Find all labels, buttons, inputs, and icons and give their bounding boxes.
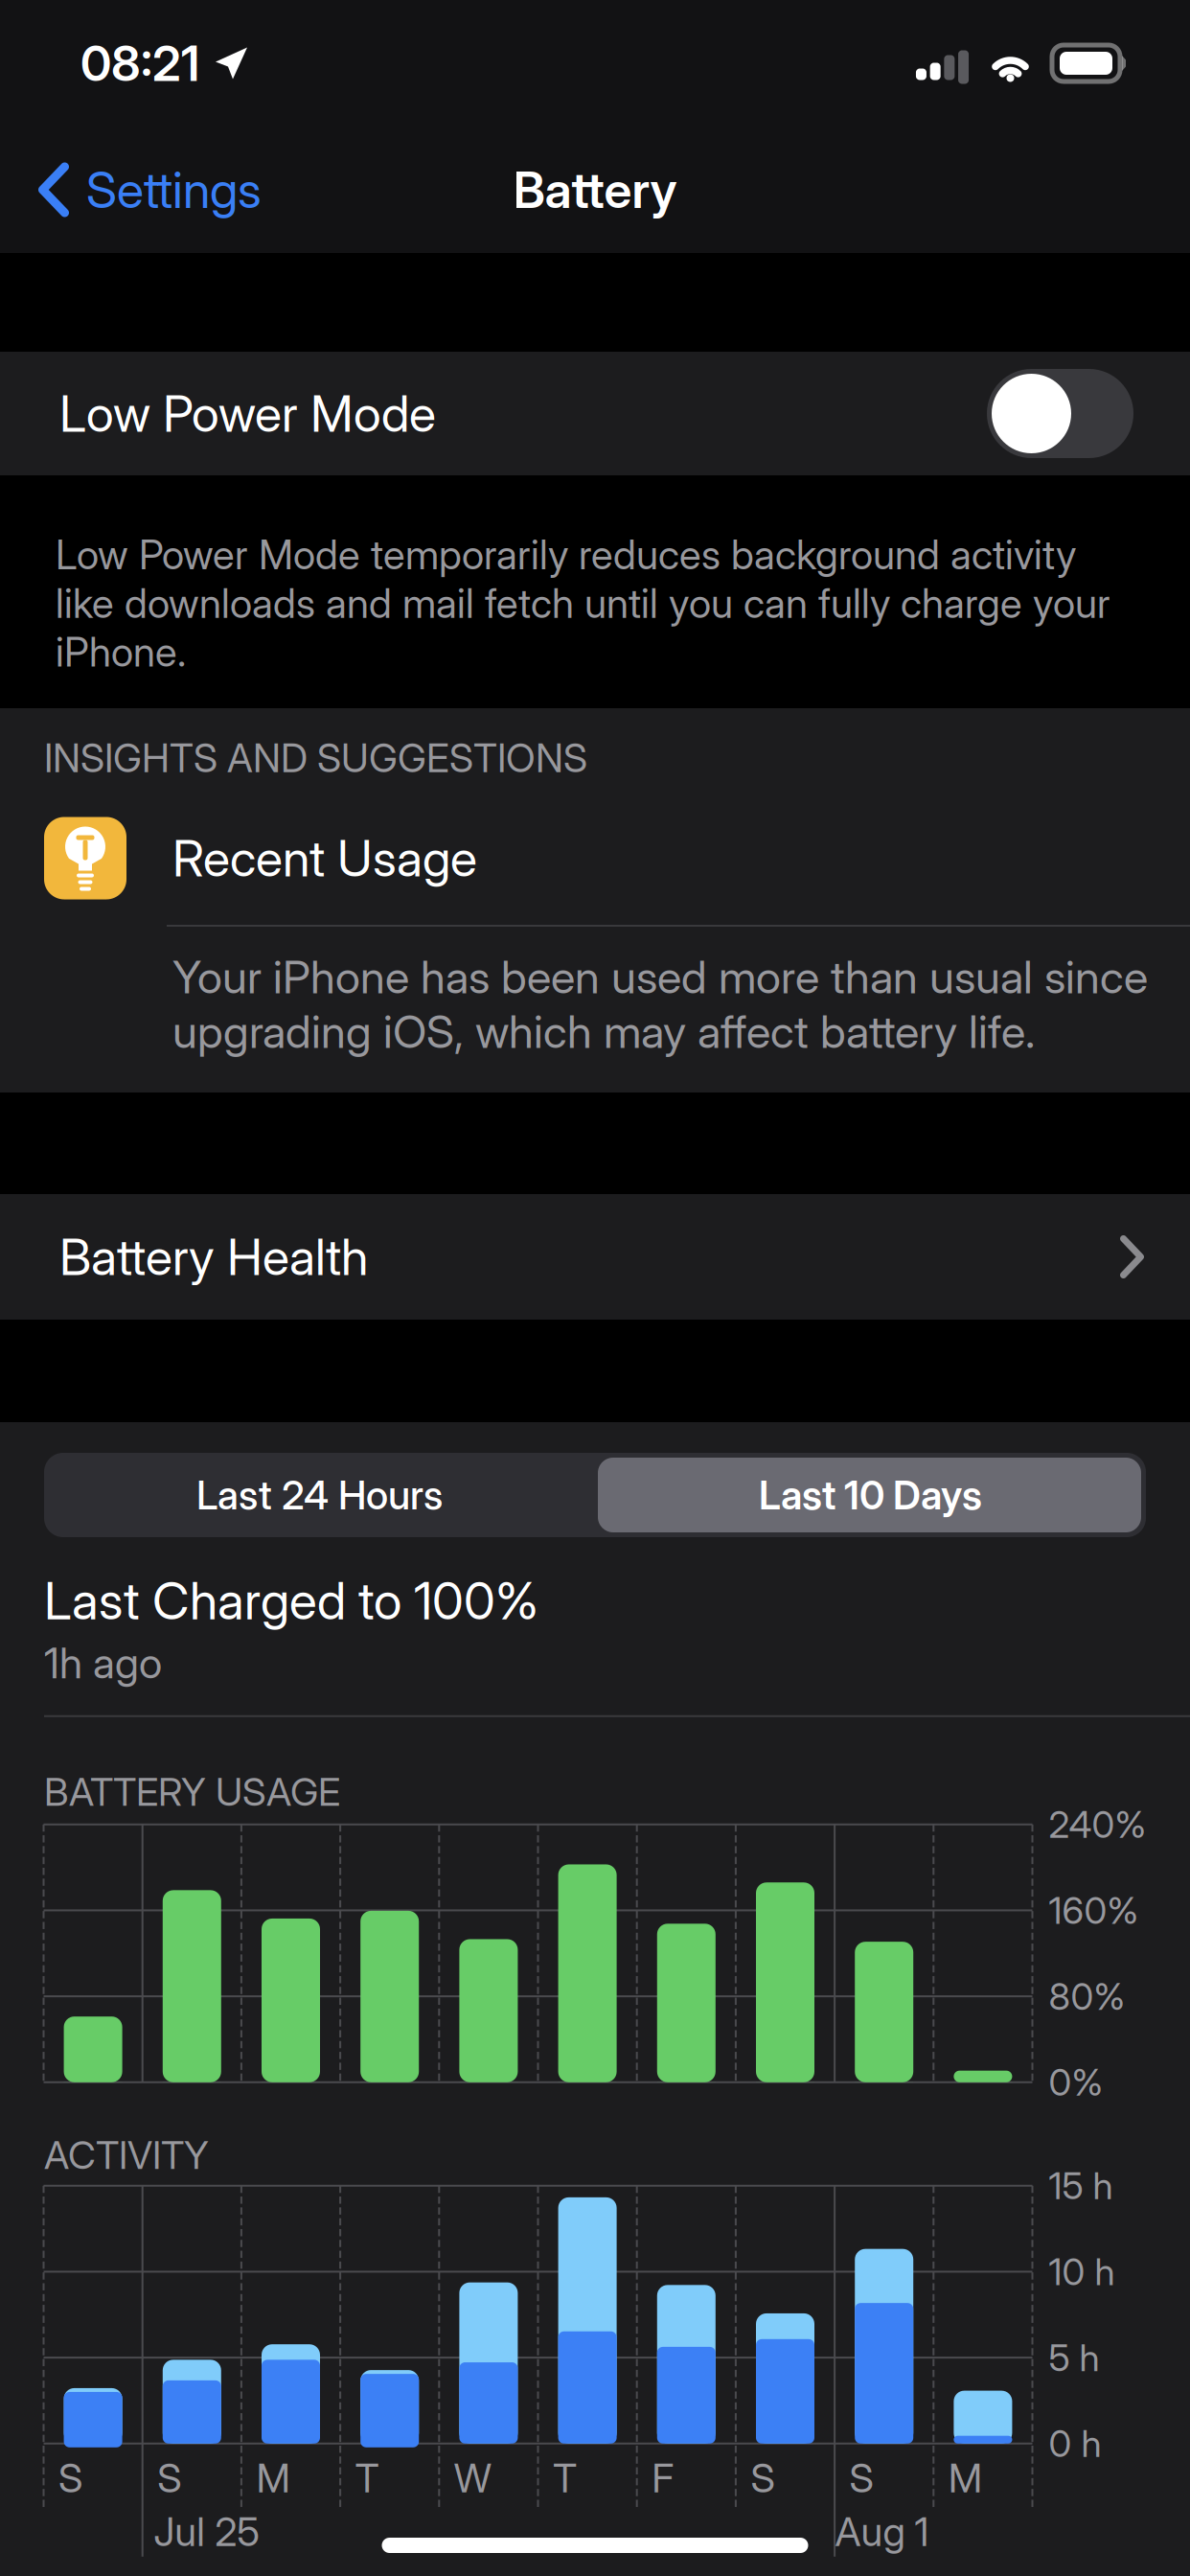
staticText: 08:21 <box>80 34 199 93</box>
staticText: Low Power Mode temporarily reduces backg… <box>56 530 1110 676</box>
staticText: 240% <box>1049 1802 1146 1847</box>
button[interactable]: Last 10 Days <box>595 1453 1146 1537</box>
staticText: Last 24 Hours <box>196 1471 443 1519</box>
staticText: 15 h <box>1049 2163 1113 2208</box>
staticText: ACTIVITY <box>44 2132 209 2178</box>
staticText: INSIGHTS AND SUGGESTIONS <box>44 734 587 782</box>
button[interactable]: Low Power Mode <box>0 352 1190 475</box>
staticText: F <box>652 2454 674 2502</box>
staticText: S <box>751 2454 775 2502</box>
staticText: Aug 1 <box>835 2508 929 2556</box>
button[interactable]: Last 24 Hours <box>44 1453 595 1537</box>
staticText: Jul 25 <box>153 2508 260 2556</box>
button[interactable]: Settings <box>0 138 285 241</box>
staticText: S <box>157 2454 181 2502</box>
staticText: Battery Health <box>59 1227 368 1287</box>
staticText: 0% <box>1049 2060 1103 2105</box>
staticText: 5 h <box>1049 2335 1099 2380</box>
staticText: Settings <box>86 160 262 220</box>
staticText: M <box>256 2454 290 2502</box>
staticText: Last Charged to 100% <box>44 1570 538 1632</box>
staticText: 160% <box>1049 1888 1139 1933</box>
staticText: 10 h <box>1049 2249 1115 2294</box>
staticText: Your iPhone has been used more than usua… <box>172 950 1148 1059</box>
staticText: 80% <box>1049 1974 1125 2019</box>
staticText: Recent Usage <box>172 828 477 888</box>
button[interactable]: Battery Health <box>0 1194 1190 1320</box>
staticText: S <box>849 2454 873 2502</box>
staticText: Battery <box>513 160 677 220</box>
button[interactable]: Recent Usage <box>0 816 1190 900</box>
staticText: T <box>355 2454 379 2502</box>
staticText: 1h ago <box>44 1637 162 1688</box>
staticText: S <box>58 2454 82 2502</box>
staticText: BATTERY USAGE <box>44 1769 340 1815</box>
staticText: M <box>948 2454 982 2502</box>
staticText: Low Power Mode <box>59 383 436 444</box>
staticText: Last 10 Days <box>759 1471 982 1519</box>
staticText: 0 h <box>1049 2421 1101 2466</box>
staticText: T <box>553 2454 577 2502</box>
staticText: W <box>454 2454 491 2502</box>
